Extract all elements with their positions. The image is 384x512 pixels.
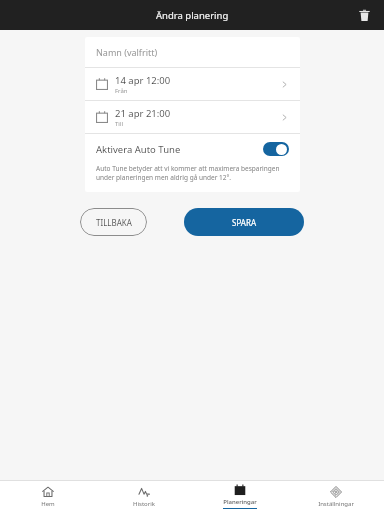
button[interactable]: Planeringar xyxy=(192,481,288,512)
staticText: Till xyxy=(115,120,123,128)
button[interactable]: Historik xyxy=(96,481,192,512)
staticText: TILLBAKA xyxy=(96,217,132,228)
staticText: Auto Tune betyder att vi kommer att maxi… xyxy=(96,164,284,182)
staticText: 21 apr 21:00 xyxy=(115,107,171,120)
button[interactable]: 14 apr 12:00 xyxy=(85,68,300,100)
staticText: Namn (valfritt) xyxy=(96,46,158,58)
staticText: Aktivera Auto Tune xyxy=(96,143,181,156)
button[interactable]: Ta bort xyxy=(352,3,376,27)
staticText: SPARA xyxy=(232,217,257,228)
staticText: Från xyxy=(115,87,128,95)
staticText: Ändra planering xyxy=(156,9,229,22)
staticText: Historik xyxy=(133,500,155,508)
button[interactable]: Namn (valfritt) xyxy=(85,37,300,67)
staticText: Hem xyxy=(41,500,55,508)
button[interactable]: Inställningar xyxy=(288,481,384,512)
button[interactable]: Aktivera Auto Tune xyxy=(85,134,300,164)
staticText: Inställningar xyxy=(318,500,354,508)
button[interactable]: SPARA xyxy=(184,208,304,236)
button[interactable]: Hem xyxy=(0,481,96,512)
staticText: 14 apr 12:00 xyxy=(115,74,171,87)
button[interactable]: TILLBAKA xyxy=(80,208,147,236)
button[interactable]: 21 apr 21:00 xyxy=(85,101,300,133)
staticText: Planeringar xyxy=(223,498,257,506)
button[interactable]: Auto Tune på xyxy=(263,142,289,156)
